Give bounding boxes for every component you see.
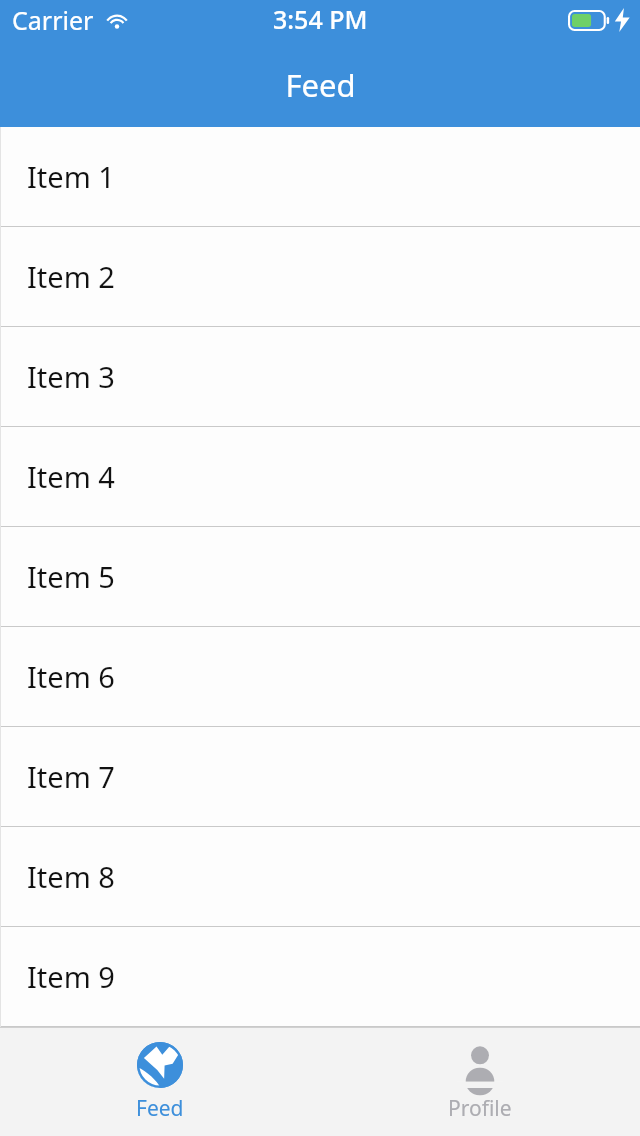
other: Feed [137,1042,183,1088]
staticText: Item 5 [27,557,115,596]
staticText: Feed [136,1094,184,1123]
button[interactable]: Item 6 [0,627,640,727]
other: Profile [457,1042,503,1088]
staticText: Item 1 [27,157,115,196]
staticText: Item 2 [27,257,115,296]
staticText: Item 6 [27,657,115,696]
button[interactable]: Item 2 [0,227,640,327]
button[interactable]: Item 1 [0,127,640,227]
button[interactable]: Item 8 [0,827,640,927]
staticText: Item 9 [27,957,115,996]
button[interactable]: Item 7 [0,727,640,827]
button[interactable]: Item 9 [0,927,640,1027]
staticText: Item 4 [27,457,115,496]
button[interactable]: Item 5 [0,527,640,627]
button[interactable]: Feed [0,1028,320,1136]
staticText: Profile [448,1094,512,1123]
staticText: Item 3 [27,357,115,396]
button[interactable]: Item 3 [0,327,640,427]
staticText: Item 8 [27,857,115,896]
staticText: Feed [285,64,356,106]
button[interactable]: Profile [320,1028,640,1136]
staticText: Item 7 [27,757,115,796]
staticText: Carrier [12,3,94,37]
button[interactable]: Item 4 [0,427,640,527]
staticText: 3:54 PM [273,2,368,36]
